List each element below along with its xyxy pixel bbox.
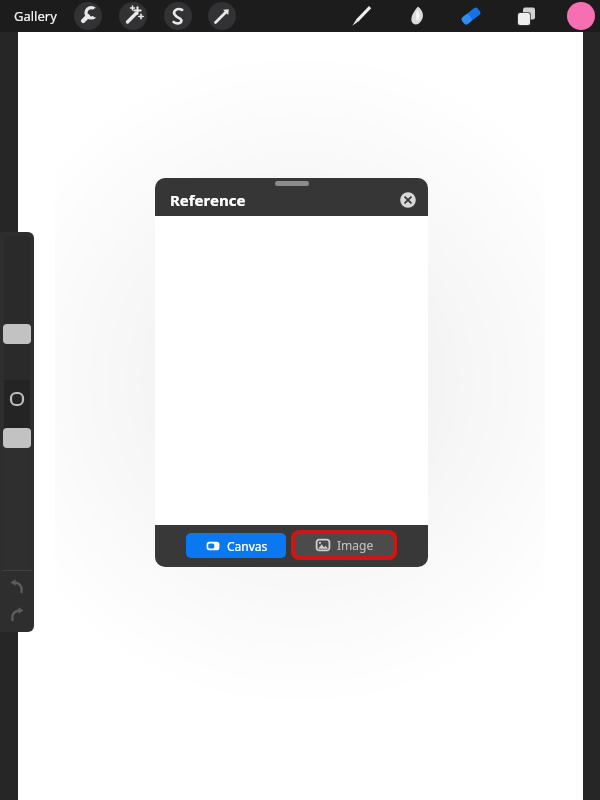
button[interactable]: Canvas <box>186 533 286 558</box>
button[interactable]: Color <box>567 2 595 30</box>
staticText: Image <box>337 537 374 553</box>
button[interactable]: Layers <box>511 1 541 31</box>
button[interactable]: Modify <box>8 390 26 408</box>
button[interactable]: Redo <box>6 604 28 626</box>
button[interactable]: Gallery <box>8 2 63 30</box>
staticText: Canvas <box>227 538 268 554</box>
button[interactable]: Transform <box>208 2 236 30</box>
button[interactable]: Actions <box>74 2 102 30</box>
button[interactable]: Image <box>295 534 393 556</box>
button[interactable]: Selection <box>164 2 192 30</box>
button[interactable]: Smudge <box>402 1 432 31</box>
button[interactable]: Brush size <box>4 236 30 396</box>
button[interactable]: Brush opacity <box>4 430 30 570</box>
button[interactable]: Paint <box>347 1 377 31</box>
button[interactable]: Adjustments <box>119 2 147 30</box>
button[interactable]: Undo <box>6 576 28 598</box>
button[interactable]: Erase <box>456 1 486 31</box>
staticText: Gallery <box>14 7 57 25</box>
staticText: Reference <box>170 190 246 210</box>
button[interactable]: Close <box>398 190 418 210</box>
